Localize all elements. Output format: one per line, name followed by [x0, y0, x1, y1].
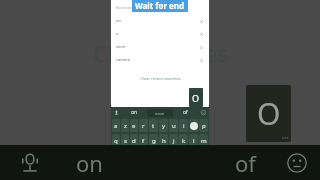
button[interactable]: r — [139, 119, 148, 132]
button[interactable]: f — [139, 134, 148, 147]
button[interactable]: a — [112, 119, 120, 132]
button[interactable]: q — [112, 134, 120, 147]
button[interactable]: Voice typing — [0, 145, 60, 180]
staticText: s — [124, 137, 127, 145]
staticText: store — [116, 44, 126, 49]
button[interactable]: of — [174, 107, 197, 118]
staticText: p — [202, 122, 206, 130]
button[interactable]: on — [111, 14, 209, 27]
staticText: o — [116, 31, 119, 36]
button[interactable]: on — [122, 107, 146, 118]
button[interactable]: s — [121, 134, 129, 147]
button[interactable]: m — [199, 134, 208, 147]
button[interactable]: p — [199, 119, 208, 132]
button[interactable]: t — [149, 119, 158, 132]
button[interactable]: of — [216, 145, 274, 180]
staticText: on — [131, 109, 138, 116]
button[interactable]: O — [246, 85, 291, 142]
button[interactable]: Clear recent searches — [138, 74, 183, 83]
staticText: d — [132, 137, 136, 145]
staticText: h — [162, 137, 166, 145]
staticText: f — [142, 137, 145, 145]
staticText: onze — [155, 111, 165, 116]
staticText: m — [201, 137, 207, 145]
button[interactable]: l — [189, 134, 198, 147]
staticText: es — [205, 38, 228, 68]
button[interactable] — [189, 119, 198, 132]
staticText: q — [114, 137, 118, 145]
staticText: g — [152, 137, 156, 145]
staticText: z — [124, 122, 127, 130]
button[interactable]: on — [60, 145, 118, 180]
staticText: Clear recent searches — [140, 76, 181, 81]
button[interactable]: e — [130, 119, 138, 132]
staticText: Cl — [93, 38, 113, 68]
button[interactable]: Emoji — [274, 145, 320, 180]
button[interactable]: Emoji — [197, 107, 209, 118]
staticText: O — [192, 92, 200, 104]
staticText: a — [114, 122, 118, 130]
staticText: u — [172, 122, 176, 130]
staticText: Wait for end — [135, 0, 185, 11]
button[interactable]: z — [121, 119, 129, 132]
staticText: t — [152, 122, 155, 130]
button[interactable]: h — [159, 134, 168, 147]
button[interactable]: u — [169, 119, 178, 132]
button[interactable]: Voice typing — [111, 107, 122, 118]
staticText: camera — [116, 57, 130, 62]
button[interactable]: onze — [146, 107, 174, 118]
staticText: i — [183, 122, 185, 130]
button[interactable]: Remove camera — [198, 57, 204, 63]
staticText: k — [182, 137, 186, 145]
button[interactable]: d — [130, 134, 138, 147]
staticText: r — [142, 122, 145, 130]
button[interactable]: j — [169, 134, 178, 147]
staticText: j — [173, 137, 175, 145]
staticText: O — [257, 93, 281, 134]
staticText: Recent searches — [116, 6, 139, 10]
button[interactable]: Remove on — [198, 18, 204, 24]
button[interactable]: Remove store — [198, 44, 204, 50]
button[interactable]: camera — [111, 53, 209, 66]
staticText: of — [235, 148, 256, 178]
staticText: y — [162, 122, 166, 130]
button[interactable]: Remove o — [198, 31, 204, 37]
button[interactable]: i — [179, 119, 188, 132]
staticText: l — [193, 137, 195, 145]
button[interactable]: g — [149, 134, 158, 147]
button[interactable]: y — [159, 119, 168, 132]
staticText: e — [132, 122, 136, 130]
staticText: on — [116, 18, 121, 23]
button[interactable]: o — [111, 27, 209, 40]
button[interactable]: store — [111, 40, 209, 53]
staticText: on — [76, 148, 103, 178]
staticText: of — [183, 109, 188, 116]
button[interactable]: k — [179, 134, 188, 147]
